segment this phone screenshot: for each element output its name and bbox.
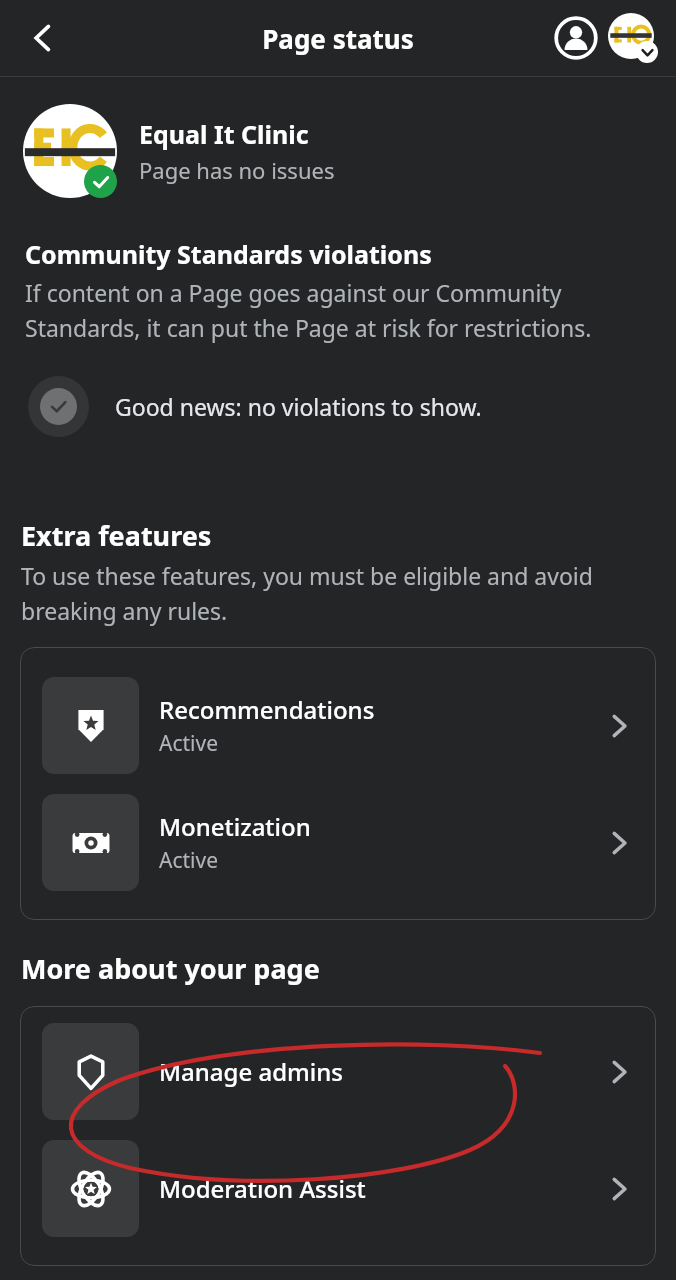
staticText: Equal It Clinic [139,117,309,151]
button[interactable]: Equal It Clinic [0,104,676,198]
staticText: Active [159,729,219,758]
staticText: Recommendations [159,693,375,726]
staticText: Monetization [159,810,311,843]
staticText: More about your page [21,950,320,987]
button[interactable]: Moderation Assist [20,1140,656,1237]
staticText: If content on a Page goes against our Co… [25,277,651,344]
staticText: Moderation Assist [159,1172,366,1205]
button[interactable]: Manage admins [20,1023,656,1120]
staticText: To use these features, you must be eligi… [21,560,655,627]
staticText: Active [159,846,219,875]
staticText: Page status [262,21,414,56]
staticText: Community Standards violations [25,237,432,271]
button[interactable]: Back [14,9,72,67]
staticText: Page has no issues [139,155,335,185]
button[interactable]: Monetization [20,794,656,891]
button[interactable]: Your profile [550,12,602,64]
button[interactable]: Switch page [606,11,660,65]
staticText: Manage admins [159,1055,343,1088]
staticText: Good news: no violations to show. [115,391,482,422]
button[interactable]: Recommendations [20,677,656,774]
button[interactable]: Good news: no violations to show. [0,372,676,441]
staticText: Extra features [21,517,212,554]
